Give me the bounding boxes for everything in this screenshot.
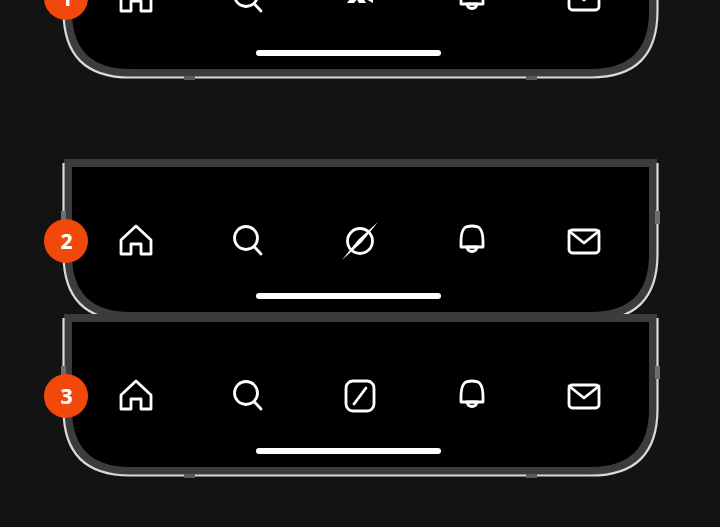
button[interactable]: Search <box>185 366 302 428</box>
button[interactable]: Search <box>185 211 302 273</box>
button[interactable]: Notifications <box>419 366 536 428</box>
button[interactable]: Notifications <box>419 211 536 273</box>
button[interactable]: Home <box>68 366 185 428</box>
staticText: 3 <box>60 382 73 411</box>
button[interactable]: Messages <box>536 211 653 273</box>
button[interactable]: Messages <box>536 0 653 30</box>
button[interactable]: Notifications <box>419 0 536 30</box>
button[interactable]: 1 <box>44 0 88 20</box>
button[interactable]: 2 <box>44 219 88 263</box>
staticText: 2 <box>60 227 73 256</box>
button[interactable]: Grok <box>302 0 419 30</box>
button[interactable]: Home <box>68 0 185 30</box>
button[interactable]: 3 <box>44 374 88 418</box>
button[interactable]: Grok <box>302 211 419 273</box>
button[interactable]: Home <box>68 211 185 273</box>
button[interactable]: Messages <box>536 366 653 428</box>
staticText: 1 <box>60 0 73 13</box>
button[interactable]: Search <box>185 0 302 30</box>
button[interactable]: Grok <box>302 366 419 428</box>
